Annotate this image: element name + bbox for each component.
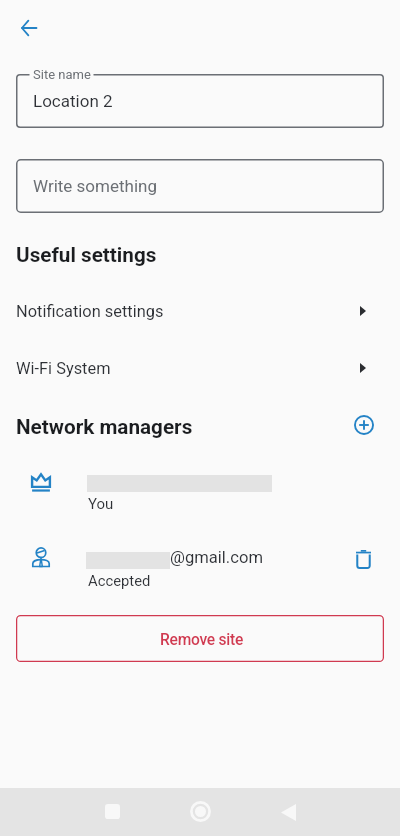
staticText: Network managers [16, 415, 193, 439]
staticText: Useful settings [16, 243, 157, 267]
button[interactable]: Back [7, 6, 51, 50]
staticText: Location 2 [33, 91, 113, 111]
button[interactable]: Recent apps [89, 788, 134, 836]
button[interactable]: Write something [16, 159, 384, 213]
button[interactable]: You [0, 462, 400, 518]
staticText: Accepted [88, 572, 151, 589]
button[interactable]: Remove network manager [342, 539, 385, 582]
button[interactable]: Home [178, 788, 223, 836]
staticText: You [88, 495, 114, 513]
staticText: Site name [33, 67, 91, 82]
button[interactable]: Site name [16, 74, 384, 128]
staticText: Remove site [160, 631, 244, 649]
button[interactable]: Back [266, 788, 311, 836]
staticText: Write something [33, 176, 157, 196]
staticText: @gmail.com [170, 548, 263, 567]
button[interactable]: Wi-Fi System [0, 348, 400, 388]
button[interactable]: Notification settings [0, 291, 400, 331]
button[interactable]: Remove site [16, 615, 384, 662]
button[interactable]: Add network manager [344, 405, 383, 444]
staticText: Wi-Fi System [16, 359, 111, 378]
staticText: Notification settings [16, 302, 164, 321]
